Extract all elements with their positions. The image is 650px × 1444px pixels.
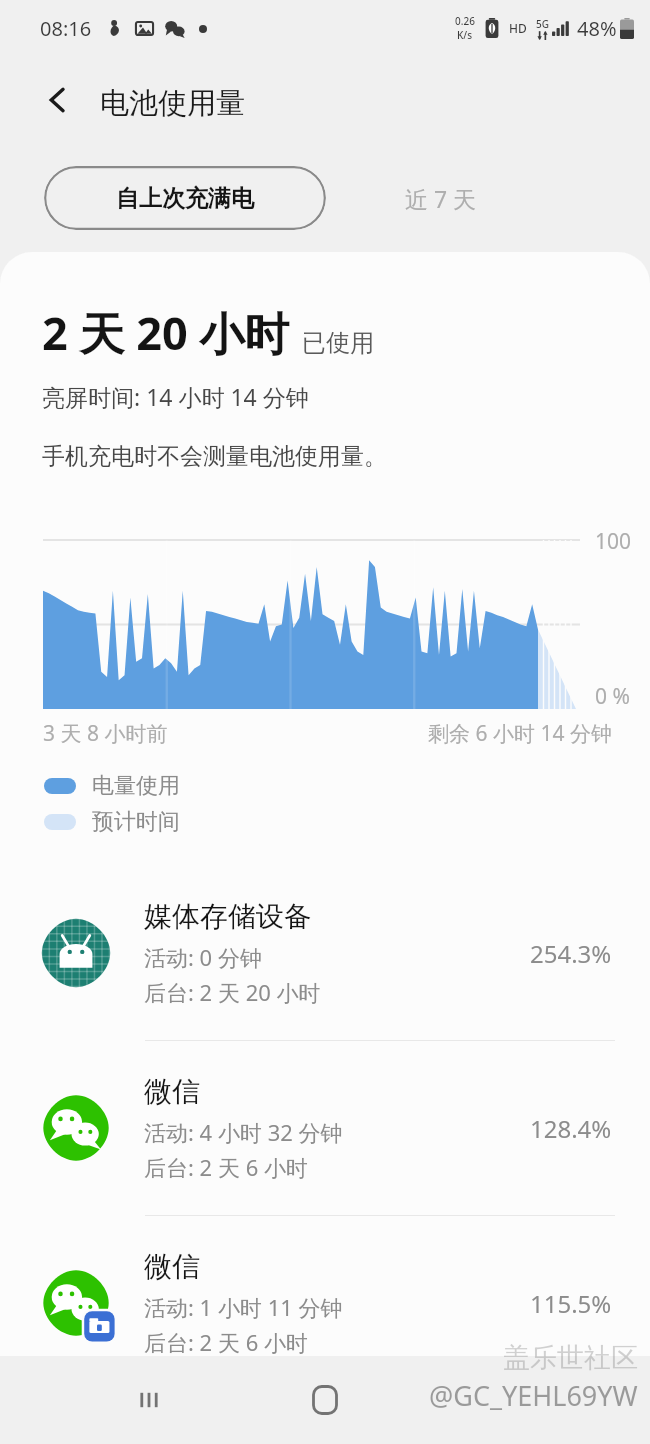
staticText: HD bbox=[509, 20, 527, 36]
staticText: 08:16 bbox=[40, 15, 92, 42]
staticText: K/s bbox=[457, 28, 473, 42]
staticText: 3 天 8 小时前 bbox=[43, 719, 168, 748]
button[interactable]: 近 7 天 bbox=[366, 166, 516, 230]
staticText: 已使用 bbox=[302, 328, 374, 358]
staticText: 0.26 bbox=[455, 14, 475, 28]
staticText: 254.3% bbox=[530, 937, 612, 970]
staticText: 48% bbox=[577, 15, 617, 42]
button[interactable]: Back bbox=[470, 1369, 532, 1431]
staticText: 电量使用 bbox=[92, 772, 180, 800]
staticText: 115.5% bbox=[530, 1287, 612, 1320]
staticText: 近 7 天 bbox=[405, 183, 477, 214]
staticText: 活动: 0 分钟 bbox=[144, 942, 262, 972]
button[interactable]: Back bbox=[30, 72, 86, 128]
staticText: 预计时间 bbox=[92, 808, 180, 836]
button[interactable]: 预计时间 bbox=[44, 808, 180, 836]
staticText: 媒体存储设备 bbox=[144, 899, 312, 934]
staticText: @GC_YEHL69YW bbox=[429, 1377, 638, 1414]
staticText: 微信 bbox=[144, 1074, 200, 1109]
button[interactable]: 自上次充满电 bbox=[44, 166, 326, 230]
button[interactable]: 媒体存储设备 bbox=[0, 866, 650, 1041]
staticText: 活动: 4 小时 32 分钟 bbox=[144, 1117, 343, 1147]
button[interactable]: 微信 bbox=[0, 1216, 650, 1390]
staticText: 后台: 2 天 20 小时 bbox=[144, 977, 321, 1007]
staticText: 后台: 2 天 6 小时 bbox=[144, 1327, 308, 1357]
staticText: 5G bbox=[536, 17, 549, 31]
staticText: 盖乐世社区 bbox=[503, 1341, 638, 1375]
button[interactable]: Home bbox=[294, 1369, 356, 1431]
staticText: 活动: 1 小时 11 分钟 bbox=[144, 1292, 343, 1322]
staticText: 剩余 6 小时 14 分钟 bbox=[428, 719, 612, 748]
staticText: 100 bbox=[595, 527, 632, 556]
button[interactable]: Recent apps bbox=[118, 1369, 180, 1431]
staticText: 亮屏时间: 14 小时 14 分钟 bbox=[42, 381, 309, 412]
staticText: 微信 bbox=[144, 1249, 200, 1284]
staticText: 0 % bbox=[595, 682, 630, 711]
staticText: 2 天 20 小时 bbox=[42, 302, 290, 363]
staticText: 128.4% bbox=[530, 1112, 612, 1145]
staticText: 后台: 2 天 6 小时 bbox=[144, 1152, 308, 1182]
button[interactable]: 微信 bbox=[0, 1041, 650, 1216]
button[interactable]: 电量使用 bbox=[44, 772, 180, 800]
staticText: 自上次充满电 bbox=[116, 184, 254, 213]
staticText: 电池使用量 bbox=[100, 85, 245, 122]
staticText: 手机充电时不会测量电池使用量。 bbox=[42, 442, 387, 471]
